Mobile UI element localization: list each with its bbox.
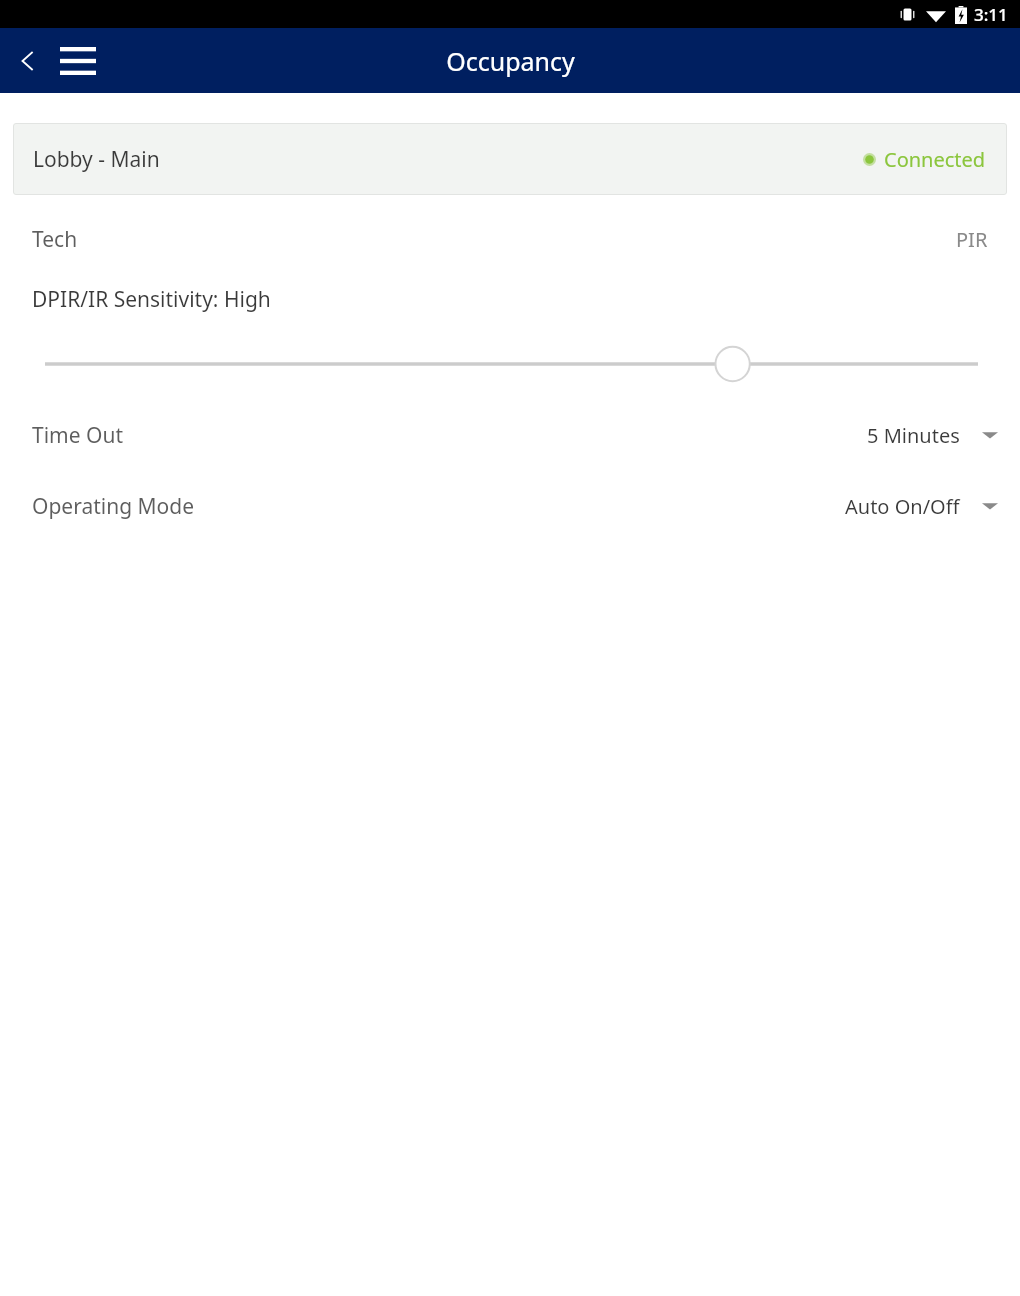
staticText: Tech [32, 225, 78, 254]
button[interactable]: Back [8, 41, 48, 81]
button[interactable]: Sensitivity slider [0, 342, 1020, 386]
button[interactable]: Lobby - Main [13, 123, 1007, 195]
staticText: 5 Minutes [867, 422, 960, 449]
button[interactable]: Operating Mode [0, 482, 1020, 530]
staticText: Auto On/Off [845, 493, 960, 520]
staticText: Lobby - Main [33, 145, 160, 174]
staticText: Occupancy [446, 44, 575, 78]
staticText: Connected [884, 146, 986, 173]
staticText: Time Out [32, 421, 123, 450]
staticText: DPIR/IR Sensitivity: High [32, 285, 271, 314]
staticText: Operating Mode [32, 492, 195, 521]
button[interactable]: Time Out [0, 411, 1020, 459]
button[interactable]: Menu [54, 37, 102, 85]
staticText: PIR [956, 226, 988, 253]
staticText: 3:11 [974, 3, 1008, 26]
